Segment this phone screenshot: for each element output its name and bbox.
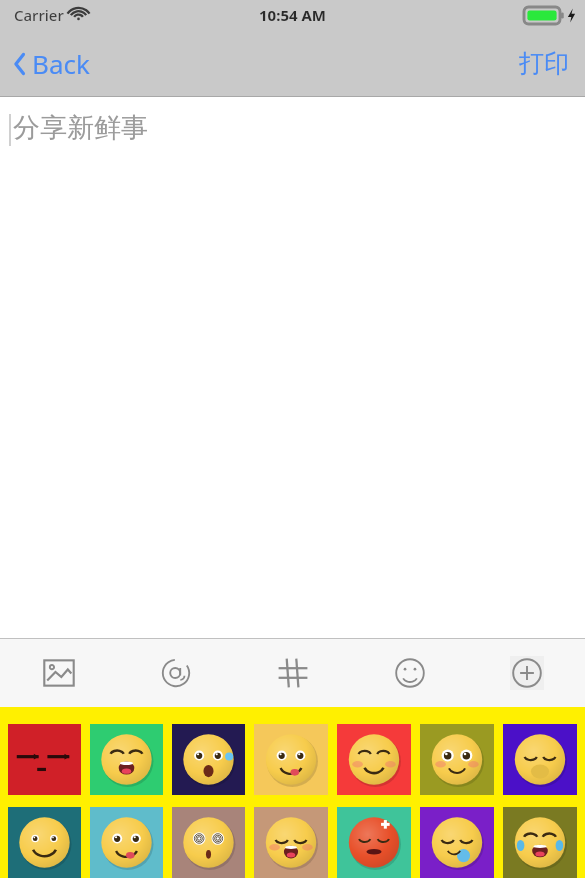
staticText: 打印 (519, 48, 569, 79)
staticText: Carrier (14, 5, 64, 25)
button[interactable]: Mention someone (117, 639, 234, 707)
button[interactable]: Emoji 7 (503, 724, 577, 795)
button[interactable]: Insert emoji (351, 639, 468, 707)
staticText: 10:54 AM (259, 5, 326, 25)
staticText: Back (32, 46, 90, 81)
button[interactable]: Emoji 6 (420, 724, 494, 795)
button[interactable]: Emoji 3 (172, 724, 245, 795)
button[interactable]: Emoji 2 (90, 807, 163, 878)
button[interactable]: Emoji 5 (337, 807, 411, 878)
button[interactable]: Back (0, 38, 106, 89)
button[interactable]: Emoji 7 (503, 807, 577, 878)
button[interactable]: Emoji 4 (254, 724, 328, 795)
button[interactable]: Emoji 1 (8, 807, 81, 878)
button[interactable]: 打印 (503, 40, 585, 87)
button[interactable]: 分享新鲜事 (0, 97, 585, 638)
button[interactable]: Emoji 6 (420, 807, 494, 878)
button[interactable]: Emoji 5 (337, 724, 411, 795)
button[interactable]: Emoji 2 (90, 724, 163, 795)
button[interactable]: Emoji 3 (172, 807, 245, 878)
button[interactable]: Emoji 4 (254, 807, 328, 878)
button[interactable]: Insert image (0, 639, 117, 707)
button[interactable]: Emoji 1 (8, 724, 81, 795)
button[interactable]: Add topic (234, 639, 351, 707)
staticText: 分享新鲜事 (13, 111, 148, 145)
button[interactable]: More options (468, 639, 585, 707)
